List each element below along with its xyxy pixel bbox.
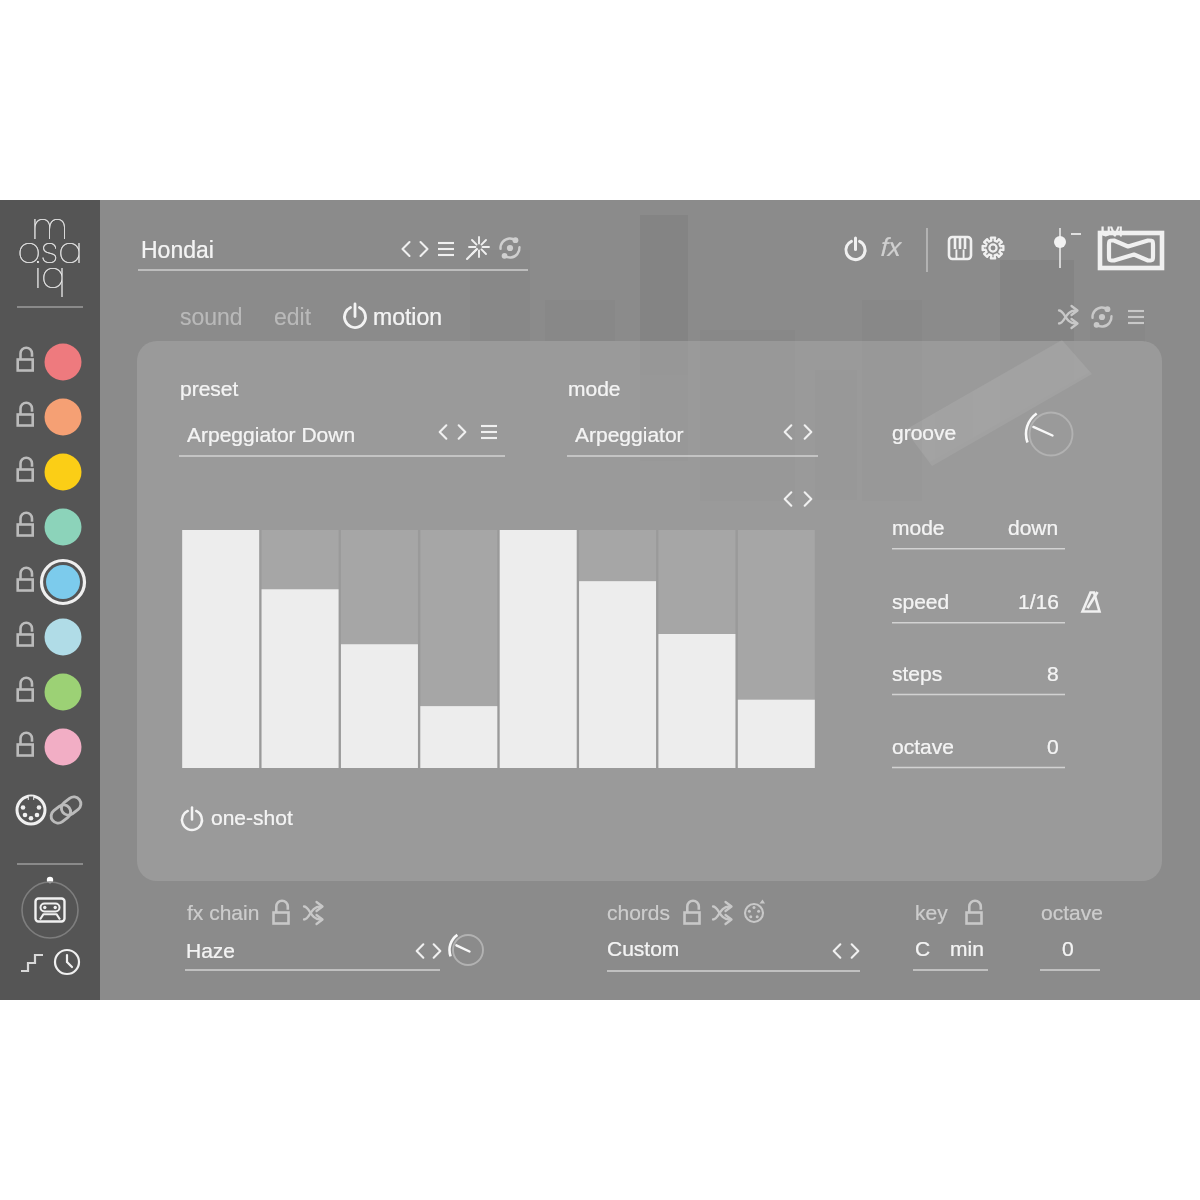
button[interactable] bbox=[0, 0, 1200, 1200]
